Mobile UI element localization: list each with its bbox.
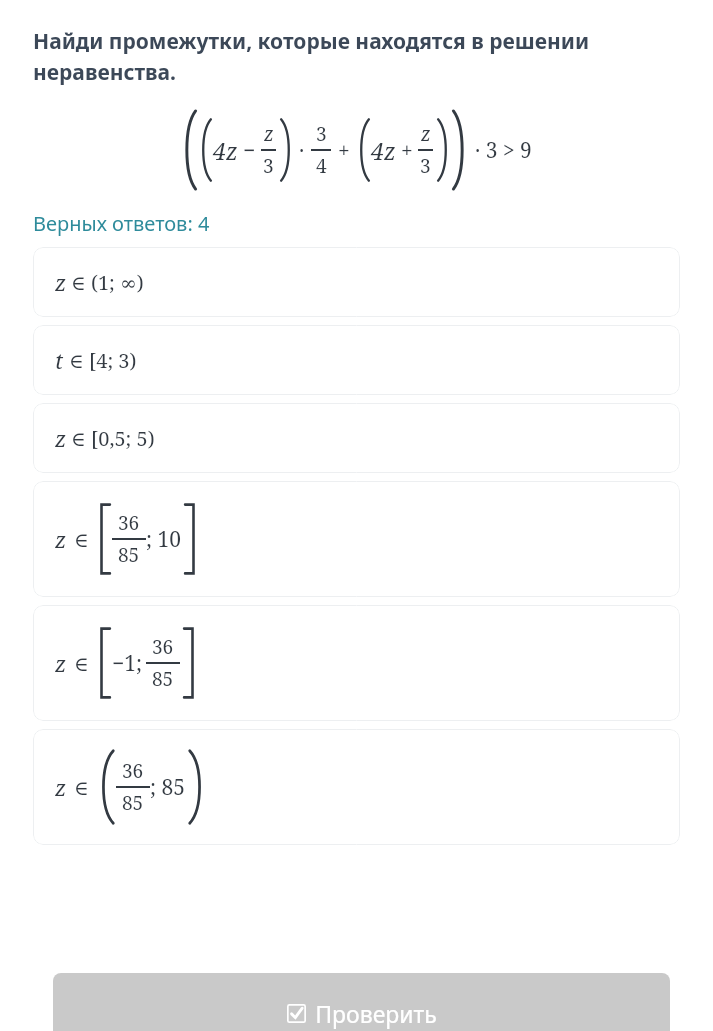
button[interactable]: z (33, 247, 680, 317)
button[interactable]: z (33, 403, 680, 473)
staticText: 4 (316, 153, 327, 179)
staticText: z (421, 121, 431, 147)
staticText: z (55, 267, 67, 297)
staticText: z (55, 524, 67, 554)
staticText: Верных ответов: 4 (33, 210, 210, 237)
staticText: 4 (213, 135, 226, 166)
staticText: · 3 > 9 (475, 136, 532, 165)
staticText: z (55, 423, 67, 453)
staticText: ; 10 (146, 525, 181, 554)
staticText: t (55, 345, 64, 375)
staticText: 36 (118, 510, 140, 536)
staticText: − (243, 136, 256, 165)
button[interactable]: z (33, 605, 680, 721)
staticText: ∈ [4; 3) (69, 347, 137, 374)
button[interactable]: Проверить (53, 973, 670, 1031)
staticText: ∈ (74, 652, 89, 675)
staticText: z (55, 648, 67, 678)
staticText: z (55, 772, 67, 802)
staticText: 36 (122, 758, 144, 784)
staticText: Найди промежутки, которые находятся в ре… (33, 27, 673, 86)
staticText: ∈ (74, 528, 89, 551)
staticText: ∈ (1; ∞) (71, 269, 144, 296)
button[interactable]: t (33, 325, 680, 395)
staticText: −1; (112, 649, 142, 678)
staticText: z (264, 121, 274, 147)
staticText: 3 (316, 121, 327, 147)
staticText: 85 (118, 542, 140, 568)
staticText: 4 (371, 135, 384, 166)
staticText: ∈ [0,5; 5) (71, 425, 155, 452)
staticText: z (384, 135, 396, 166)
staticText: + (338, 136, 350, 165)
staticText: 85 (152, 666, 174, 692)
button[interactable]: z (33, 729, 680, 845)
staticText: ∈ (74, 776, 89, 799)
staticText: · (299, 136, 305, 165)
staticText: ; 85 (150, 773, 185, 802)
button[interactable]: z (33, 481, 680, 597)
staticText: 3 (263, 153, 274, 179)
staticText: z (226, 135, 238, 166)
staticText: + (401, 136, 413, 165)
staticText: 36 (152, 634, 174, 660)
staticText: 3 (420, 153, 431, 179)
staticText: 85 (122, 790, 144, 816)
staticText: Проверить (315, 998, 437, 1029)
